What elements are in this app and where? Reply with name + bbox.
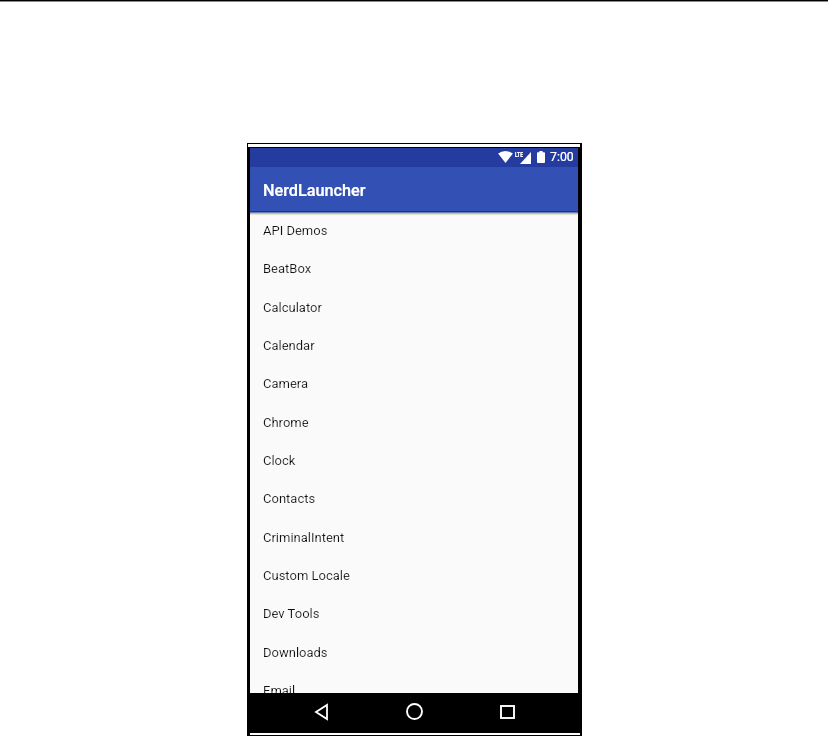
staticText: API Demos bbox=[263, 223, 328, 238]
button[interactable]: CriminalIntent bbox=[250, 518, 578, 556]
staticText: Custom Locale bbox=[263, 568, 350, 583]
button[interactable]: Recent apps bbox=[489, 694, 525, 730]
staticText: 7:00 bbox=[550, 150, 574, 164]
staticText: Contacts bbox=[263, 491, 316, 506]
staticText: LTE bbox=[515, 149, 523, 159]
staticText: NerdLauncher bbox=[263, 181, 366, 200]
button[interactable]: Custom Locale bbox=[250, 556, 578, 594]
button[interactable]: API Demos bbox=[250, 211, 578, 249]
staticText: Camera bbox=[263, 376, 309, 391]
staticText: Calendar bbox=[263, 338, 315, 353]
staticText: BeatBox bbox=[263, 261, 312, 276]
button[interactable]: Dev Tools bbox=[250, 594, 578, 632]
button[interactable]: Calculator bbox=[250, 288, 578, 326]
button[interactable]: Email bbox=[250, 671, 578, 709]
button[interactable]: BeatBox bbox=[250, 249, 578, 287]
button[interactable]: Calendar bbox=[250, 326, 578, 364]
button[interactable]: Contacts bbox=[250, 479, 578, 517]
button[interactable]: Camera bbox=[250, 364, 578, 402]
staticText: CriminalIntent bbox=[263, 530, 345, 545]
button[interactable]: Chrome bbox=[250, 403, 578, 441]
staticText: Downloads bbox=[263, 645, 328, 660]
staticText: Chrome bbox=[263, 415, 309, 430]
button[interactable]: Downloads bbox=[250, 633, 578, 671]
button[interactable]: Back bbox=[303, 694, 339, 730]
button[interactable]: Home bbox=[396, 693, 432, 729]
button[interactable]: Clock bbox=[250, 441, 578, 479]
staticText: Dev Tools bbox=[263, 606, 320, 621]
staticText: Email bbox=[263, 683, 296, 698]
staticText: Clock bbox=[263, 453, 296, 468]
staticText: Calculator bbox=[263, 300, 322, 315]
